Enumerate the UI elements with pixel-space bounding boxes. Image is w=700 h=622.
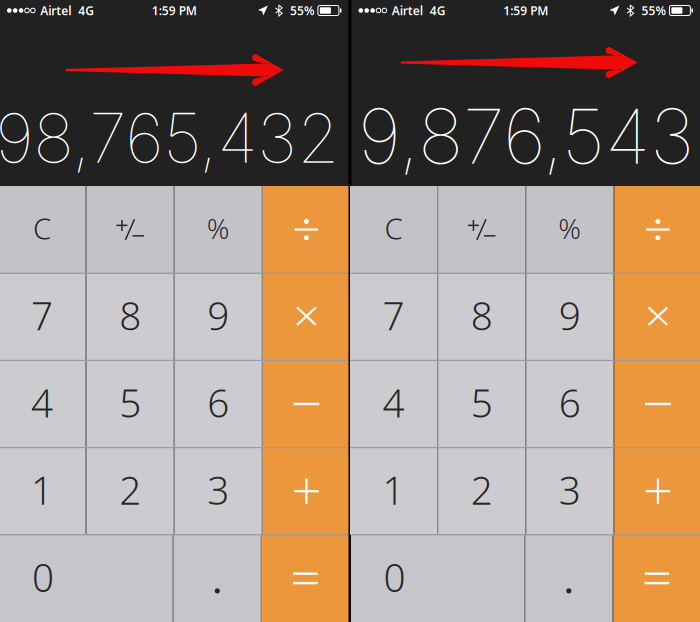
- staticText: 6: [559, 377, 581, 428]
- button[interactable]: 2: [87, 448, 174, 535]
- button[interactable]: 4: [0, 360, 86, 448]
- staticText: %: [207, 209, 230, 247]
- button[interactable]: 5: [438, 360, 525, 448]
- staticText: 1: [31, 464, 53, 515]
- button[interactable]: Minus: [263, 360, 350, 448]
- staticText: 4G: [78, 2, 94, 18]
- staticText: 2: [119, 464, 141, 515]
- staticText: 7: [31, 290, 53, 341]
- button[interactable]: C: [350, 186, 437, 273]
- button[interactable]: 6: [175, 360, 262, 448]
- button[interactable]: Divide: [263, 186, 350, 273]
- button[interactable]: 2: [438, 448, 525, 535]
- button[interactable]: 3: [175, 448, 262, 535]
- staticText: 9: [559, 290, 581, 341]
- button[interactable]: %: [526, 186, 613, 273]
- button[interactable]: Plus minus: [438, 186, 525, 273]
- staticText: 5: [471, 377, 493, 428]
- button[interactable]: Plus: [614, 448, 700, 535]
- button[interactable]: 0: [0, 535, 173, 622]
- button[interactable]: 5: [87, 360, 174, 448]
- staticText: 3: [559, 464, 581, 515]
- staticText: 98,765,432: [0, 97, 339, 179]
- staticText: Airtel: [392, 2, 423, 18]
- staticText: 1: [383, 464, 405, 515]
- staticText: Airtel: [40, 2, 71, 18]
- button[interactable]: Plus minus: [87, 186, 174, 273]
- staticText: 4G: [430, 2, 446, 18]
- button[interactable]: Minus: [614, 360, 700, 448]
- button[interactable]: 8: [87, 273, 174, 360]
- button[interactable]: Decimal point: [174, 535, 261, 622]
- button[interactable]: Decimal point: [525, 535, 612, 622]
- button[interactable]: Multiply: [263, 273, 350, 360]
- staticText: 4: [31, 377, 53, 428]
- staticText: 2: [471, 464, 493, 515]
- staticText: 9,876,543: [358, 90, 694, 182]
- staticText: 55%: [290, 2, 315, 18]
- button[interactable]: Plus: [263, 448, 350, 535]
- staticText: 1:59 PM: [152, 2, 197, 18]
- staticText: 5: [119, 377, 141, 428]
- button[interactable]: Divide: [614, 186, 700, 273]
- button[interactable]: 6: [526, 360, 613, 448]
- button[interactable]: 9: [526, 273, 613, 360]
- staticText: 0: [32, 551, 54, 602]
- staticText: 7: [383, 290, 405, 341]
- button[interactable]: Multiply: [614, 273, 700, 360]
- staticText: 6: [207, 377, 229, 428]
- staticText: 1:59 PM: [503, 2, 548, 18]
- button[interactable]: 4: [350, 360, 437, 448]
- staticText: C: [33, 209, 51, 248]
- staticText: 8: [471, 290, 493, 341]
- button[interactable]: 8: [438, 273, 525, 360]
- staticText: 8: [119, 290, 141, 341]
- staticText: 3: [207, 464, 229, 515]
- button[interactable]: 1: [350, 448, 437, 535]
- staticText: C: [385, 209, 403, 248]
- button[interactable]: C: [0, 186, 86, 273]
- staticText: 55%: [641, 2, 666, 18]
- staticText: 9: [207, 290, 229, 341]
- button[interactable]: Equals: [262, 535, 349, 622]
- button[interactable]: Equals: [613, 535, 700, 622]
- button[interactable]: 0: [351, 535, 524, 622]
- button[interactable]: 3: [526, 448, 613, 535]
- staticText: %: [558, 209, 581, 247]
- button[interactable]: 7: [0, 273, 86, 360]
- button[interactable]: %: [175, 186, 262, 273]
- button[interactable]: 1: [0, 448, 86, 535]
- button[interactable]: 7: [350, 273, 437, 360]
- button[interactable]: 9: [175, 273, 262, 360]
- staticText: 0: [384, 551, 406, 602]
- staticText: 4: [383, 377, 405, 428]
